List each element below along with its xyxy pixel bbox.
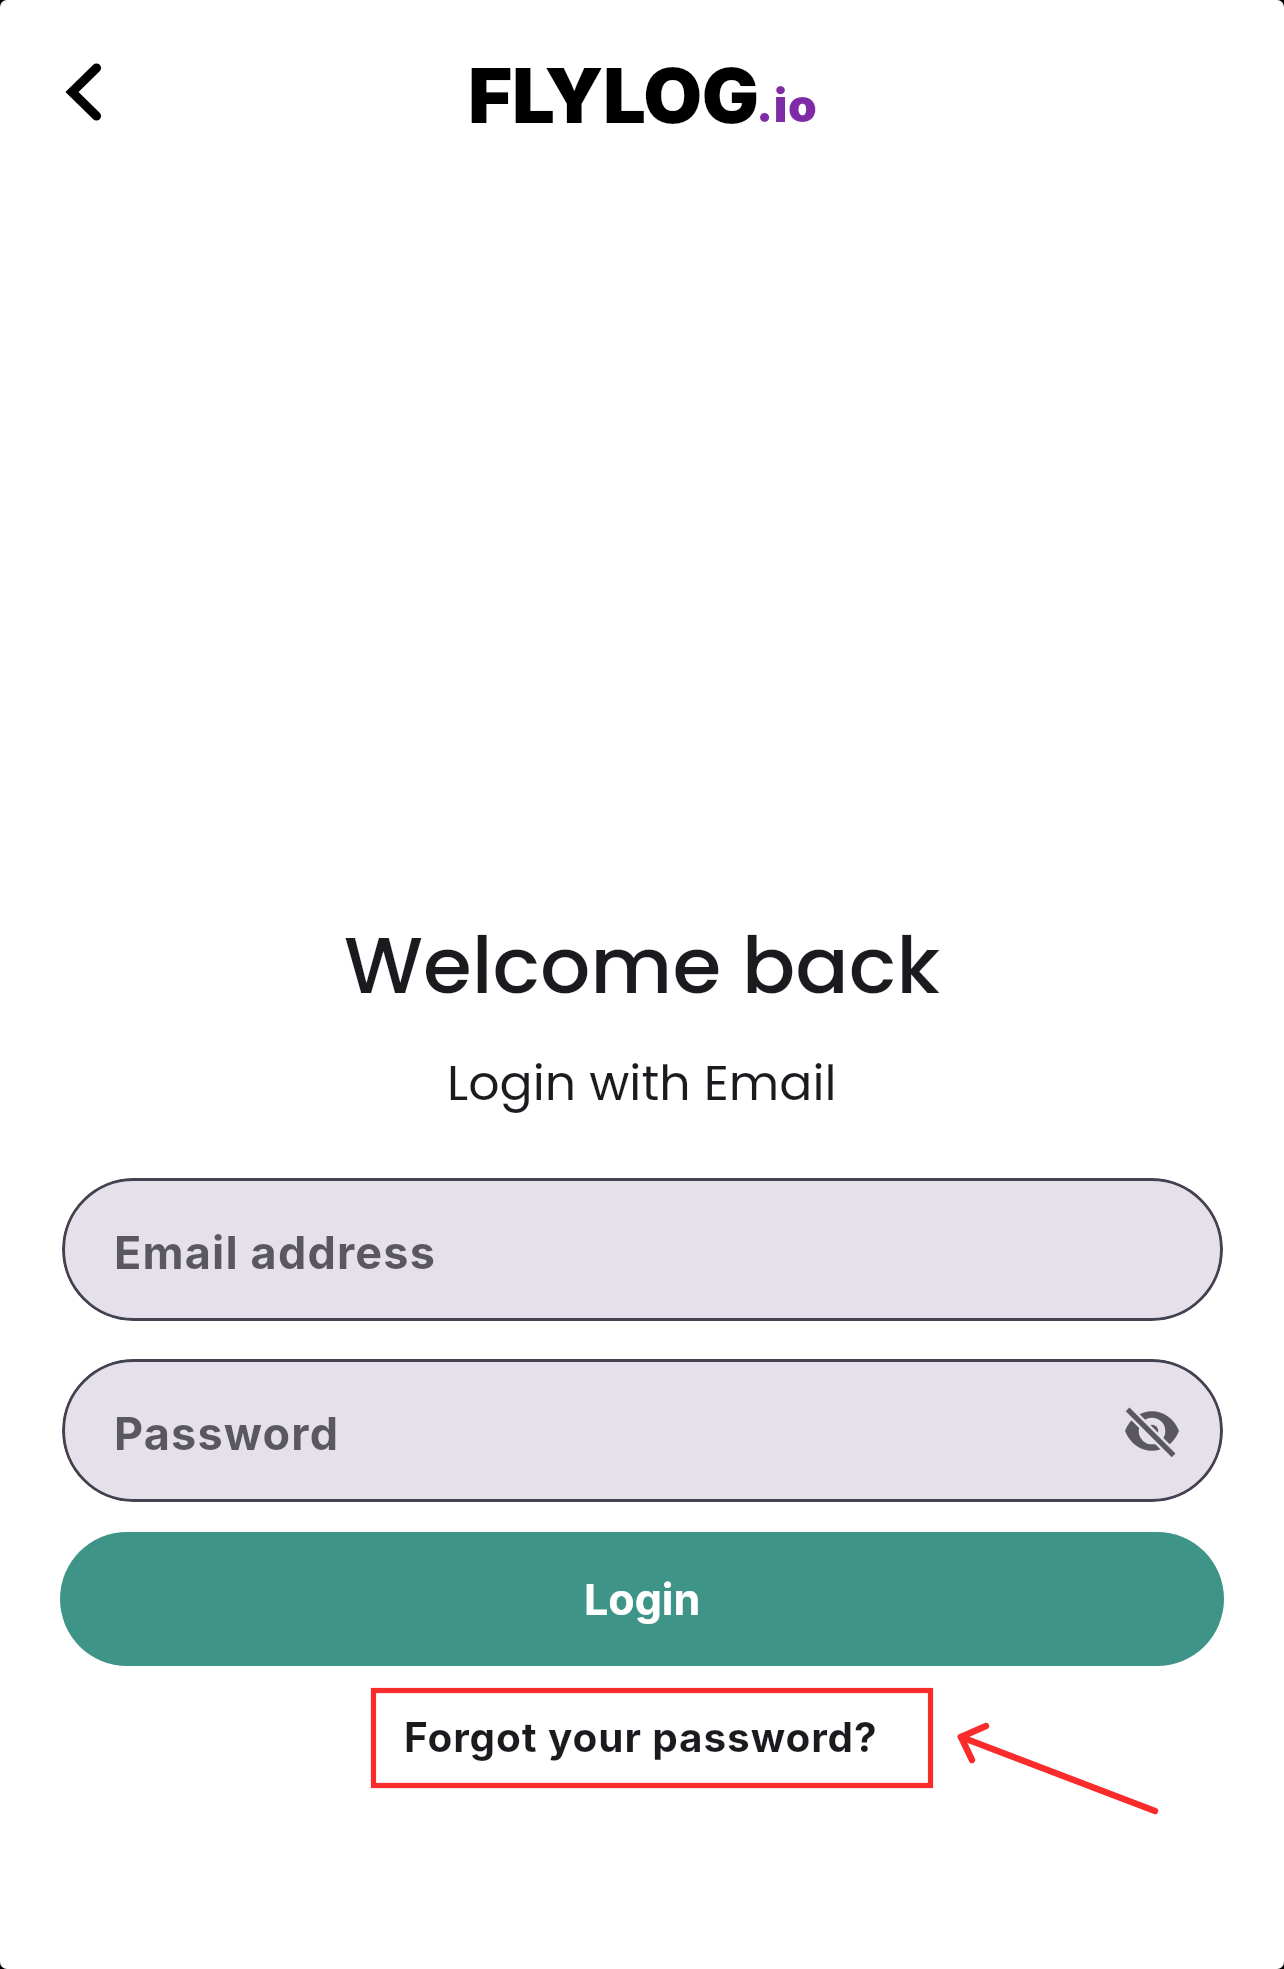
staticText: .io — [756, 77, 818, 133]
button[interactable]: Password — [62, 1359, 1223, 1502]
button[interactable]: Back — [36, 44, 132, 140]
staticText: Login with Email — [447, 1049, 837, 1118]
button[interactable]: Forgot your password? — [376, 1690, 905, 1785]
staticText: Password — [114, 1406, 340, 1460]
staticText: Login — [584, 1573, 701, 1625]
button[interactable]: Login — [60, 1532, 1224, 1666]
button[interactable]: Show password — [1109, 1388, 1195, 1474]
staticText: FLYLOG — [468, 49, 759, 141]
staticText: Email address — [114, 1225, 437, 1279]
button[interactable]: Email address — [62, 1178, 1223, 1321]
staticText: Welcome back — [344, 910, 940, 1021]
staticText: Forgot your password? — [404, 1713, 878, 1762]
